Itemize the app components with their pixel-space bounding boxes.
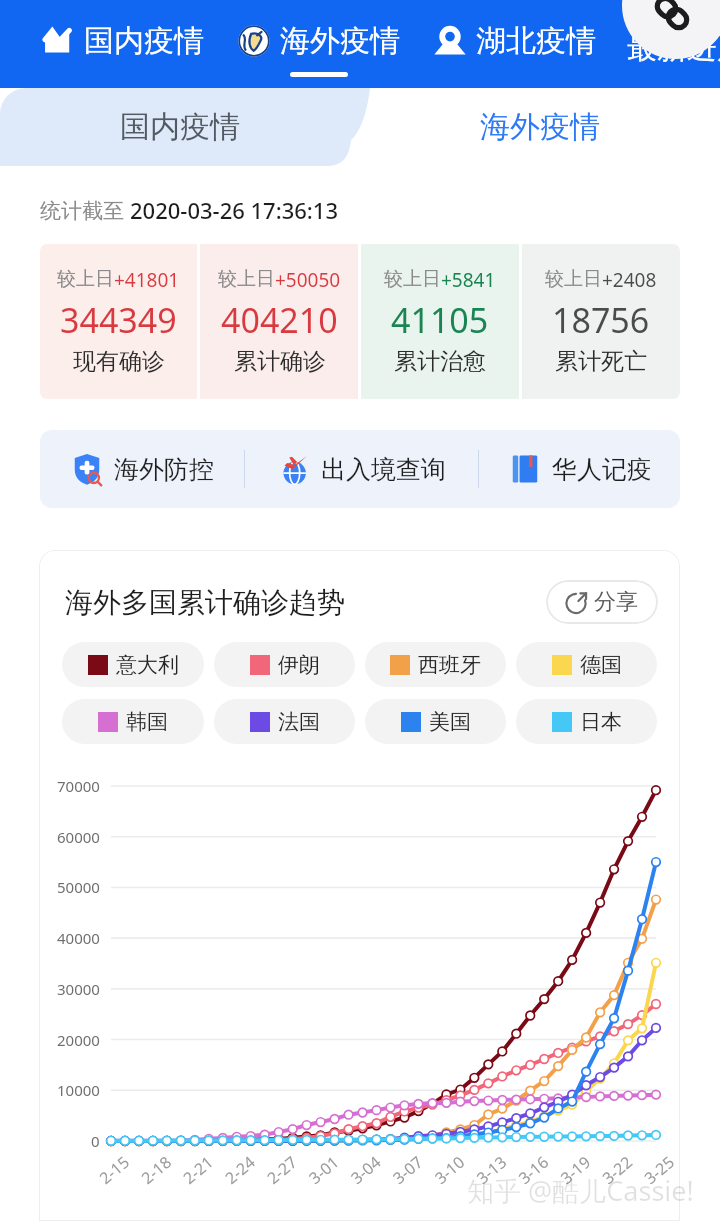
button[interactable]: 德国 bbox=[516, 642, 657, 687]
button[interactable]: 分享 bbox=[546, 580, 658, 624]
staticText: 日本 bbox=[580, 709, 622, 735]
staticText: +2408 bbox=[602, 267, 657, 293]
staticText: +50050 bbox=[275, 267, 341, 293]
staticText: 较上日 bbox=[57, 267, 114, 291]
button[interactable]: 海外疫情 bbox=[237, 0, 400, 77]
staticText: 法国 bbox=[278, 709, 320, 735]
button[interactable]: 较上日 bbox=[40, 244, 197, 399]
staticText: 意大利 bbox=[116, 652, 179, 678]
button[interactable]: 华人记疫 bbox=[479, 430, 680, 508]
staticText: 累计治愈 bbox=[394, 347, 486, 376]
button[interactable]: 韩国 bbox=[62, 699, 204, 744]
button[interactable]: 日本 bbox=[516, 699, 657, 744]
button[interactable]: 国内疫情 bbox=[41, 0, 204, 77]
staticText: 海外多国累计确诊趋势 bbox=[65, 585, 345, 620]
staticText: 国内疫情 bbox=[120, 108, 240, 146]
staticText: 统计截至 bbox=[40, 196, 130, 225]
staticText: 西班牙 bbox=[418, 652, 481, 678]
button[interactable]: 美国 bbox=[365, 699, 506, 744]
staticText: 较上日 bbox=[545, 267, 602, 291]
button[interactable]: 意大利 bbox=[62, 642, 204, 687]
staticText: 国内疫情 bbox=[84, 22, 204, 60]
staticText: 湖北疫情 bbox=[476, 22, 596, 60]
staticText: 韩国 bbox=[126, 709, 168, 735]
staticText: 较上日 bbox=[218, 267, 275, 291]
staticText: 最新进展 bbox=[627, 29, 720, 67]
staticText: 海外疫情 bbox=[280, 22, 400, 60]
staticText: 现有确诊 bbox=[73, 347, 165, 376]
staticText: 344349 bbox=[60, 297, 177, 343]
button[interactable]: 较上日 bbox=[522, 244, 680, 399]
staticText: 伊朗 bbox=[278, 652, 320, 678]
button[interactable]: 法国 bbox=[214, 699, 355, 744]
staticText: +5841 bbox=[441, 267, 496, 293]
staticText: 分享 bbox=[594, 588, 638, 616]
button[interactable]: 国内疫情 bbox=[0, 88, 360, 166]
staticText: 累计死亡 bbox=[555, 347, 647, 376]
staticText: 41105 bbox=[391, 297, 489, 343]
staticText: 较上日 bbox=[384, 267, 441, 291]
staticText: 德国 bbox=[580, 652, 622, 678]
staticText: 累计确诊 bbox=[234, 347, 326, 376]
button[interactable]: Link bbox=[622, 0, 720, 59]
button[interactable]: 西班牙 bbox=[365, 642, 506, 687]
button[interactable]: 较上日 bbox=[200, 244, 358, 399]
button[interactable]: 海外疫情 bbox=[360, 88, 720, 166]
staticText: 知乎 @酷儿Cassie! bbox=[467, 1172, 694, 1209]
staticText: 18756 bbox=[552, 297, 650, 343]
button[interactable]: 伊朗 bbox=[214, 642, 355, 687]
staticText: 2020-03-26 17:36:13 bbox=[130, 195, 338, 225]
button[interactable]: 较上日 bbox=[361, 244, 519, 399]
staticText: +41801 bbox=[114, 267, 180, 293]
staticText: 404210 bbox=[221, 297, 338, 343]
button[interactable]: 出入境查询 bbox=[245, 430, 478, 508]
staticText: 海外防控 bbox=[114, 454, 214, 485]
button[interactable]: 湖北疫情 bbox=[433, 0, 596, 77]
button[interactable]: 海外防控 bbox=[40, 430, 244, 508]
staticText: 华人记疫 bbox=[552, 454, 652, 485]
staticText: 出入境查询 bbox=[321, 454, 446, 485]
staticText: 美国 bbox=[429, 709, 471, 735]
staticText: 海外疫情 bbox=[480, 108, 600, 146]
